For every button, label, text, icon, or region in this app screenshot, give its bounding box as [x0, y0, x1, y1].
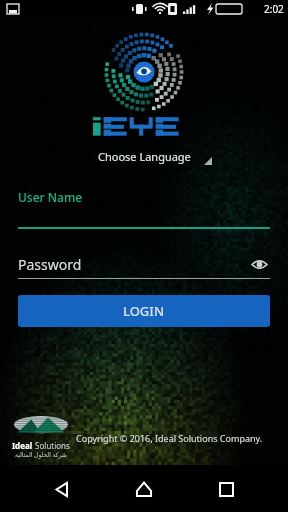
staticText: User Name	[18, 189, 83, 205]
button[interactable]: LOGIN	[18, 295, 270, 327]
staticText: شركة الحلول المثالية	[15, 451, 67, 459]
staticText: Solutions	[33, 440, 70, 451]
button[interactable]: Show password	[248, 253, 270, 275]
staticText: Ideal	[12, 440, 33, 451]
button[interactable]: Recents	[206, 469, 246, 509]
button[interactable]: Home	[124, 469, 164, 509]
staticText: 2:02	[264, 2, 284, 16]
button[interactable]: Choose Language	[76, 145, 212, 167]
button[interactable]: Password	[18, 253, 270, 279]
staticText: Copyright © 2016, Ideal Solutions Compan…	[76, 432, 282, 444]
staticText: LOGIN	[123, 302, 165, 320]
button[interactable]: User Name	[18, 189, 270, 229]
staticText: Choose Language	[98, 149, 191, 164]
staticText: Password	[18, 255, 248, 274]
button[interactable]: Back	[42, 469, 82, 509]
